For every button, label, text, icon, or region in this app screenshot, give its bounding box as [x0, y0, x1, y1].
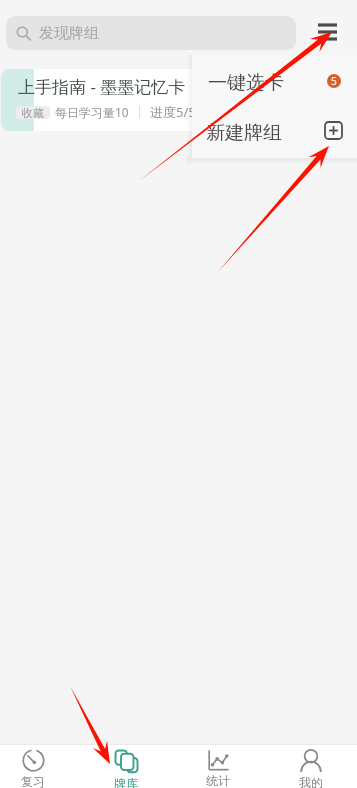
staticText: 统计	[206, 773, 230, 788]
staticText: 收藏	[22, 106, 44, 119]
staticText: 发现牌组	[39, 24, 99, 43]
button[interactable]: 发现牌组	[6, 16, 296, 50]
button[interactable]: 一键选卡	[192, 55, 357, 107]
button[interactable]: 上手指南 - 墨墨记忆卡	[1, 69, 356, 131]
staticText: 牌库	[114, 776, 138, 788]
button[interactable]: 新建牌组	[192, 107, 357, 158]
staticText: 每日学习量10	[55, 104, 129, 120]
button[interactable]: 复习	[0, 745, 73, 788]
staticText: 进度5/5	[150, 103, 196, 121]
staticText: 新建牌组	[206, 121, 282, 145]
button[interactable]: 统计	[178, 745, 258, 788]
button[interactable]: Menu	[310, 14, 346, 50]
staticText: 5	[331, 74, 337, 88]
staticText: 我的	[299, 775, 323, 788]
other: New deck	[323, 120, 343, 140]
staticText: 一键选卡	[208, 71, 284, 95]
button[interactable]: 我的	[271, 745, 351, 788]
staticText: 上手指南 - 墨墨记忆卡	[18, 75, 186, 98]
staticText: 复习	[21, 774, 45, 788]
button[interactable]: 牌库	[86, 745, 166, 788]
